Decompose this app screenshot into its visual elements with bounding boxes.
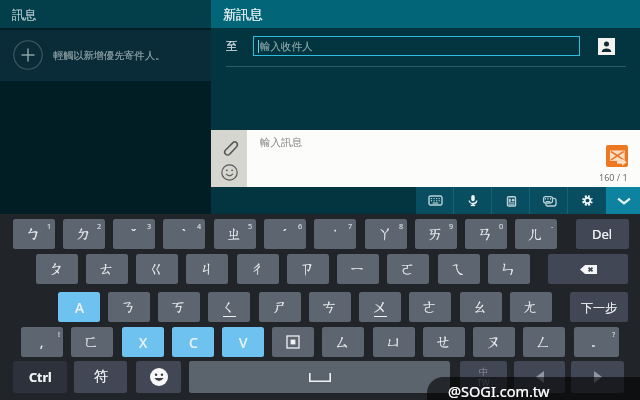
button[interactable]: ㄍ [136,254,178,284]
button[interactable]: 浮動鍵盤 [530,187,568,214]
button[interactable]: ㄆ [36,254,78,284]
button[interactable]: ㄣ [488,254,530,284]
staticText: ? [612,329,616,339]
staticText: 下一步 [581,300,617,315]
button[interactable] [272,327,314,357]
staticText: 中 [479,366,488,377]
button[interactable]: ㄛ [387,254,429,284]
staticText: ㄘ [322,298,338,317]
staticText: ㄙ [335,333,351,352]
button[interactable]: V [222,327,264,357]
button[interactable]: 向右 [571,361,624,393]
button[interactable]: ㄐ [186,254,228,284]
button[interactable]: ㄅ [13,219,55,249]
button[interactable]: ㄗ [287,254,329,284]
staticText: 0 [499,221,504,231]
button[interactable] [548,254,628,284]
staticText: ㄈ [84,333,100,352]
button[interactable]: 收起鍵盤 [606,187,640,214]
staticText: 9 [449,221,454,231]
button[interactable]: ㄕ [259,292,301,322]
staticText: ㄟ [451,260,467,279]
button[interactable]: 向左 [514,361,565,393]
button[interactable]: ㄑ [208,292,250,322]
button[interactable]: 鍵盤 [416,187,454,214]
button[interactable]: X [122,327,164,357]
button[interactable]: ㄦ [515,219,557,249]
button[interactable]: ㄠ [460,292,502,322]
button[interactable]: ㄤ [510,292,552,322]
staticText: ㄑ [221,298,237,317]
button[interactable]: C [172,327,214,357]
staticText: ㄞ [428,225,444,244]
button[interactable]: 輸入收件人 [253,36,580,56]
button[interactable]: ㄓ [214,219,256,249]
staticText: 。 [591,335,602,349]
button[interactable]: ˇ [113,219,155,249]
button[interactable]: ㄋ [108,292,150,322]
button[interactable]: ㄟ [438,254,480,284]
button[interactable]: ㄈ [71,327,113,357]
staticText: 2 [97,221,102,231]
staticText: V [239,333,248,352]
button[interactable]: ㄔ [237,254,279,284]
button[interactable]: 空白鍵 [189,361,450,393]
button[interactable]: 剪貼簿 [492,187,530,214]
staticText: 3 [147,221,152,231]
button[interactable]: 語音輸入 [454,187,492,214]
button[interactable]: 下一步 [570,292,628,322]
staticText: ㄅ [26,225,42,244]
staticText: ㄡ [486,333,502,352]
button[interactable]: ˊ [264,219,306,249]
button[interactable]: 輕觸以新增優先寄件人。 [0,30,211,81]
button[interactable]: 表情符號 [136,361,181,393]
staticText: ㄩ [386,333,402,352]
button[interactable]: ㄝ [423,327,465,357]
button[interactable]: 表情符號 [211,160,247,185]
staticText: 新訊息 [223,6,263,23]
button[interactable]: ㄡ [473,327,515,357]
button[interactable]: ㄞ [415,219,457,249]
button[interactable]: 附件 [211,135,247,160]
button[interactable]: ㄧ [337,254,379,284]
button[interactable]: 。 [574,327,619,357]
staticText: ㄉ [76,225,92,244]
button[interactable]: 傳送訊息 [606,145,628,167]
button[interactable]: ㄉ [63,219,105,249]
button[interactable]: ㄎ [158,292,200,322]
button[interactable]: 輸入訊息 [247,130,640,187]
staticText: ! [58,329,60,339]
staticText: 7 [348,221,353,231]
button[interactable]: 選擇聯絡人 [598,38,615,55]
button[interactable]: ˋ [163,219,205,249]
button[interactable]: ㄜ [409,292,451,322]
button[interactable]: 設定 [568,187,606,214]
button[interactable]: , [21,327,63,357]
staticText: ㄛ [400,260,416,279]
button[interactable]: ㄥ [523,327,565,357]
staticText: Del [592,225,613,243]
button[interactable]: ㄨ [359,292,401,322]
staticText: ㄆ [49,260,65,279]
button[interactable]: Del [576,219,629,249]
button[interactable]: ㄩ [373,327,415,357]
staticText: ㄐ [199,260,215,279]
button[interactable]: ˙ [314,219,356,249]
button[interactable]: 符 [74,361,127,393]
button[interactable]: 切換輸入語言 [460,361,507,393]
staticText: 5 [248,221,253,231]
staticText: Ctrl [29,369,52,386]
button[interactable]: A [58,292,100,322]
staticText: ㄣ [501,260,517,279]
staticText: ㄧ [350,260,366,279]
staticText: 1 [47,221,52,231]
button[interactable]: ㄘ [309,292,351,322]
button[interactable]: ㄚ [365,219,407,249]
staticText: ˇ [131,225,137,243]
staticText: 4 [197,221,202,231]
button[interactable]: ㄙ [322,327,364,357]
staticText: ㄓ [227,225,243,244]
button[interactable]: ㄊ [86,254,128,284]
button[interactable]: Ctrl [13,361,67,393]
button[interactable]: ㄢ [465,219,507,249]
